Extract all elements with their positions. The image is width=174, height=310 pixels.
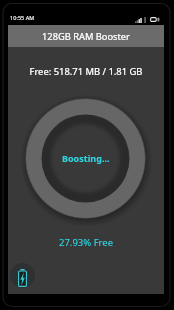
staticText: Boosting... [62, 152, 110, 164]
staticText: Free: 518.71 MB / 1.81 GB [8, 65, 164, 78]
staticText: 128GB RAM Booster [42, 30, 130, 43]
button[interactable]: Battery saver [10, 263, 35, 288]
button[interactable]: 128GB RAM Booster [8, 25, 164, 47]
staticText: 27.93% Free [8, 236, 164, 249]
staticText: 10:55 AM [10, 14, 35, 22]
button[interactable]: Boost [21, 94, 150, 223]
